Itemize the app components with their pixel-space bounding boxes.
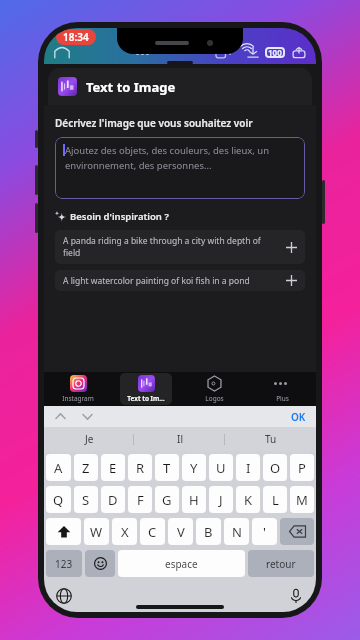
button[interactable]: ' <box>252 518 277 545</box>
staticText: E <box>109 459 117 477</box>
staticText: X <box>121 523 129 541</box>
staticText: 123 <box>55 557 73 571</box>
button[interactable]: 123 <box>46 550 82 577</box>
button[interactable] <box>81 410 94 423</box>
staticText: M <box>296 491 308 509</box>
staticText: Logos <box>205 394 224 403</box>
staticText: L <box>272 491 279 509</box>
staticText: espace <box>165 557 198 571</box>
button[interactable]: A light watercolor painting of koi fish … <box>55 270 305 291</box>
staticText: K <box>244 491 253 509</box>
button[interactable]: Q <box>46 486 71 513</box>
button[interactable]: Change keyboard <box>56 588 72 604</box>
staticText: G <box>162 491 172 509</box>
button[interactable]: U <box>209 454 233 481</box>
button[interactable] <box>54 410 67 423</box>
button[interactable]: I <box>236 454 260 481</box>
staticText: N <box>232 523 242 541</box>
staticText: S <box>82 491 90 509</box>
staticText: ' <box>263 523 266 541</box>
button[interactable]: H <box>182 486 206 513</box>
button[interactable]: L <box>263 486 287 513</box>
button[interactable]: Ajoutez des objets, des couleurs, des li… <box>55 137 305 199</box>
staticText: Y <box>190 459 198 477</box>
button[interactable]: O <box>263 454 287 481</box>
staticText: Décrivez l'image que vous souhaitez voir <box>55 116 253 130</box>
staticText: V <box>177 523 185 541</box>
button[interactable]: Tu <box>225 427 316 451</box>
staticText: Text to Im… <box>127 394 165 403</box>
button[interactable]: K <box>236 486 260 513</box>
button[interactable]: T <box>155 454 179 481</box>
button[interactable]: E <box>101 454 125 481</box>
staticText: Il <box>177 432 183 446</box>
button[interactable]: A panda riding a bike through a city wit… <box>55 230 305 264</box>
staticText: O <box>270 459 281 477</box>
button[interactable]: Dictate <box>288 588 304 604</box>
button[interactable]: Plus <box>256 373 308 405</box>
button[interactable]: Z <box>74 454 98 481</box>
staticText: B <box>204 523 213 541</box>
button[interactable]: Home <box>51 42 73 62</box>
button[interactable]: Logos <box>188 373 240 405</box>
staticText: C <box>148 523 157 541</box>
staticText: Ajoutez des objets, des couleurs, des li… <box>65 144 297 172</box>
button[interactable]: Tabs <box>213 44 233 61</box>
staticText: A panda riding a bike through a city wit… <box>63 235 280 259</box>
staticText: OK <box>291 410 306 424</box>
staticText: Besoin d'inspiration ? <box>70 210 169 223</box>
button[interactable]: S <box>74 486 98 513</box>
staticText: J <box>219 491 223 509</box>
button[interactable]: J <box>209 486 233 513</box>
button[interactable]: N <box>224 518 249 545</box>
button[interactable]: Share <box>289 44 309 61</box>
button[interactable]: D <box>101 486 125 513</box>
button[interactable]: retour <box>248 550 314 577</box>
button[interactable]: espace <box>118 550 245 577</box>
button[interactable]: X <box>112 518 137 545</box>
button[interactable]: G <box>155 486 179 513</box>
staticText: W <box>90 523 103 541</box>
button[interactable]: Emoji <box>85 550 115 577</box>
staticText: R <box>136 459 145 477</box>
button[interactable]: Shift <box>46 518 81 545</box>
button[interactable]: P <box>290 454 314 481</box>
staticText: Z <box>82 459 90 477</box>
button[interactable]: C <box>140 518 165 545</box>
staticText: I <box>246 459 251 477</box>
button[interactable]: B <box>196 518 221 545</box>
button[interactable]: V <box>168 518 193 545</box>
button[interactable]: OK <box>291 410 306 424</box>
button[interactable]: Il <box>134 427 225 451</box>
button[interactable]: F <box>128 486 152 513</box>
button[interactable]: A <box>46 454 71 481</box>
staticText: Tu <box>265 432 277 446</box>
staticText: Q <box>53 491 64 509</box>
button[interactable]: More <box>136 52 149 55</box>
button[interactable]: Backspace <box>280 518 314 545</box>
staticText: A <box>54 459 63 477</box>
staticText: Text to Image <box>86 78 176 96</box>
staticText: Je <box>85 432 94 446</box>
staticText: U <box>216 459 226 477</box>
button[interactable]: Instagram <box>52 373 104 405</box>
button[interactable]: Text to Im… <box>120 373 172 405</box>
staticText: Instagram <box>62 394 94 403</box>
staticText: retour <box>266 557 296 571</box>
staticText: D <box>108 491 118 509</box>
staticText: H <box>189 491 199 509</box>
staticText: F <box>137 491 144 509</box>
button[interactable]: W <box>84 518 109 545</box>
staticText: P <box>298 459 306 477</box>
staticText: Plus <box>276 394 289 403</box>
button[interactable]: Y <box>182 454 206 481</box>
staticText: A light watercolor painting of koi fish … <box>63 275 280 287</box>
button[interactable]: R <box>128 454 152 481</box>
staticText: T <box>163 459 171 477</box>
staticText: 100 <box>268 47 282 58</box>
button[interactable]: M <box>290 486 314 513</box>
staticText: 18:34 <box>63 30 89 44</box>
button[interactable]: Je <box>44 427 134 451</box>
